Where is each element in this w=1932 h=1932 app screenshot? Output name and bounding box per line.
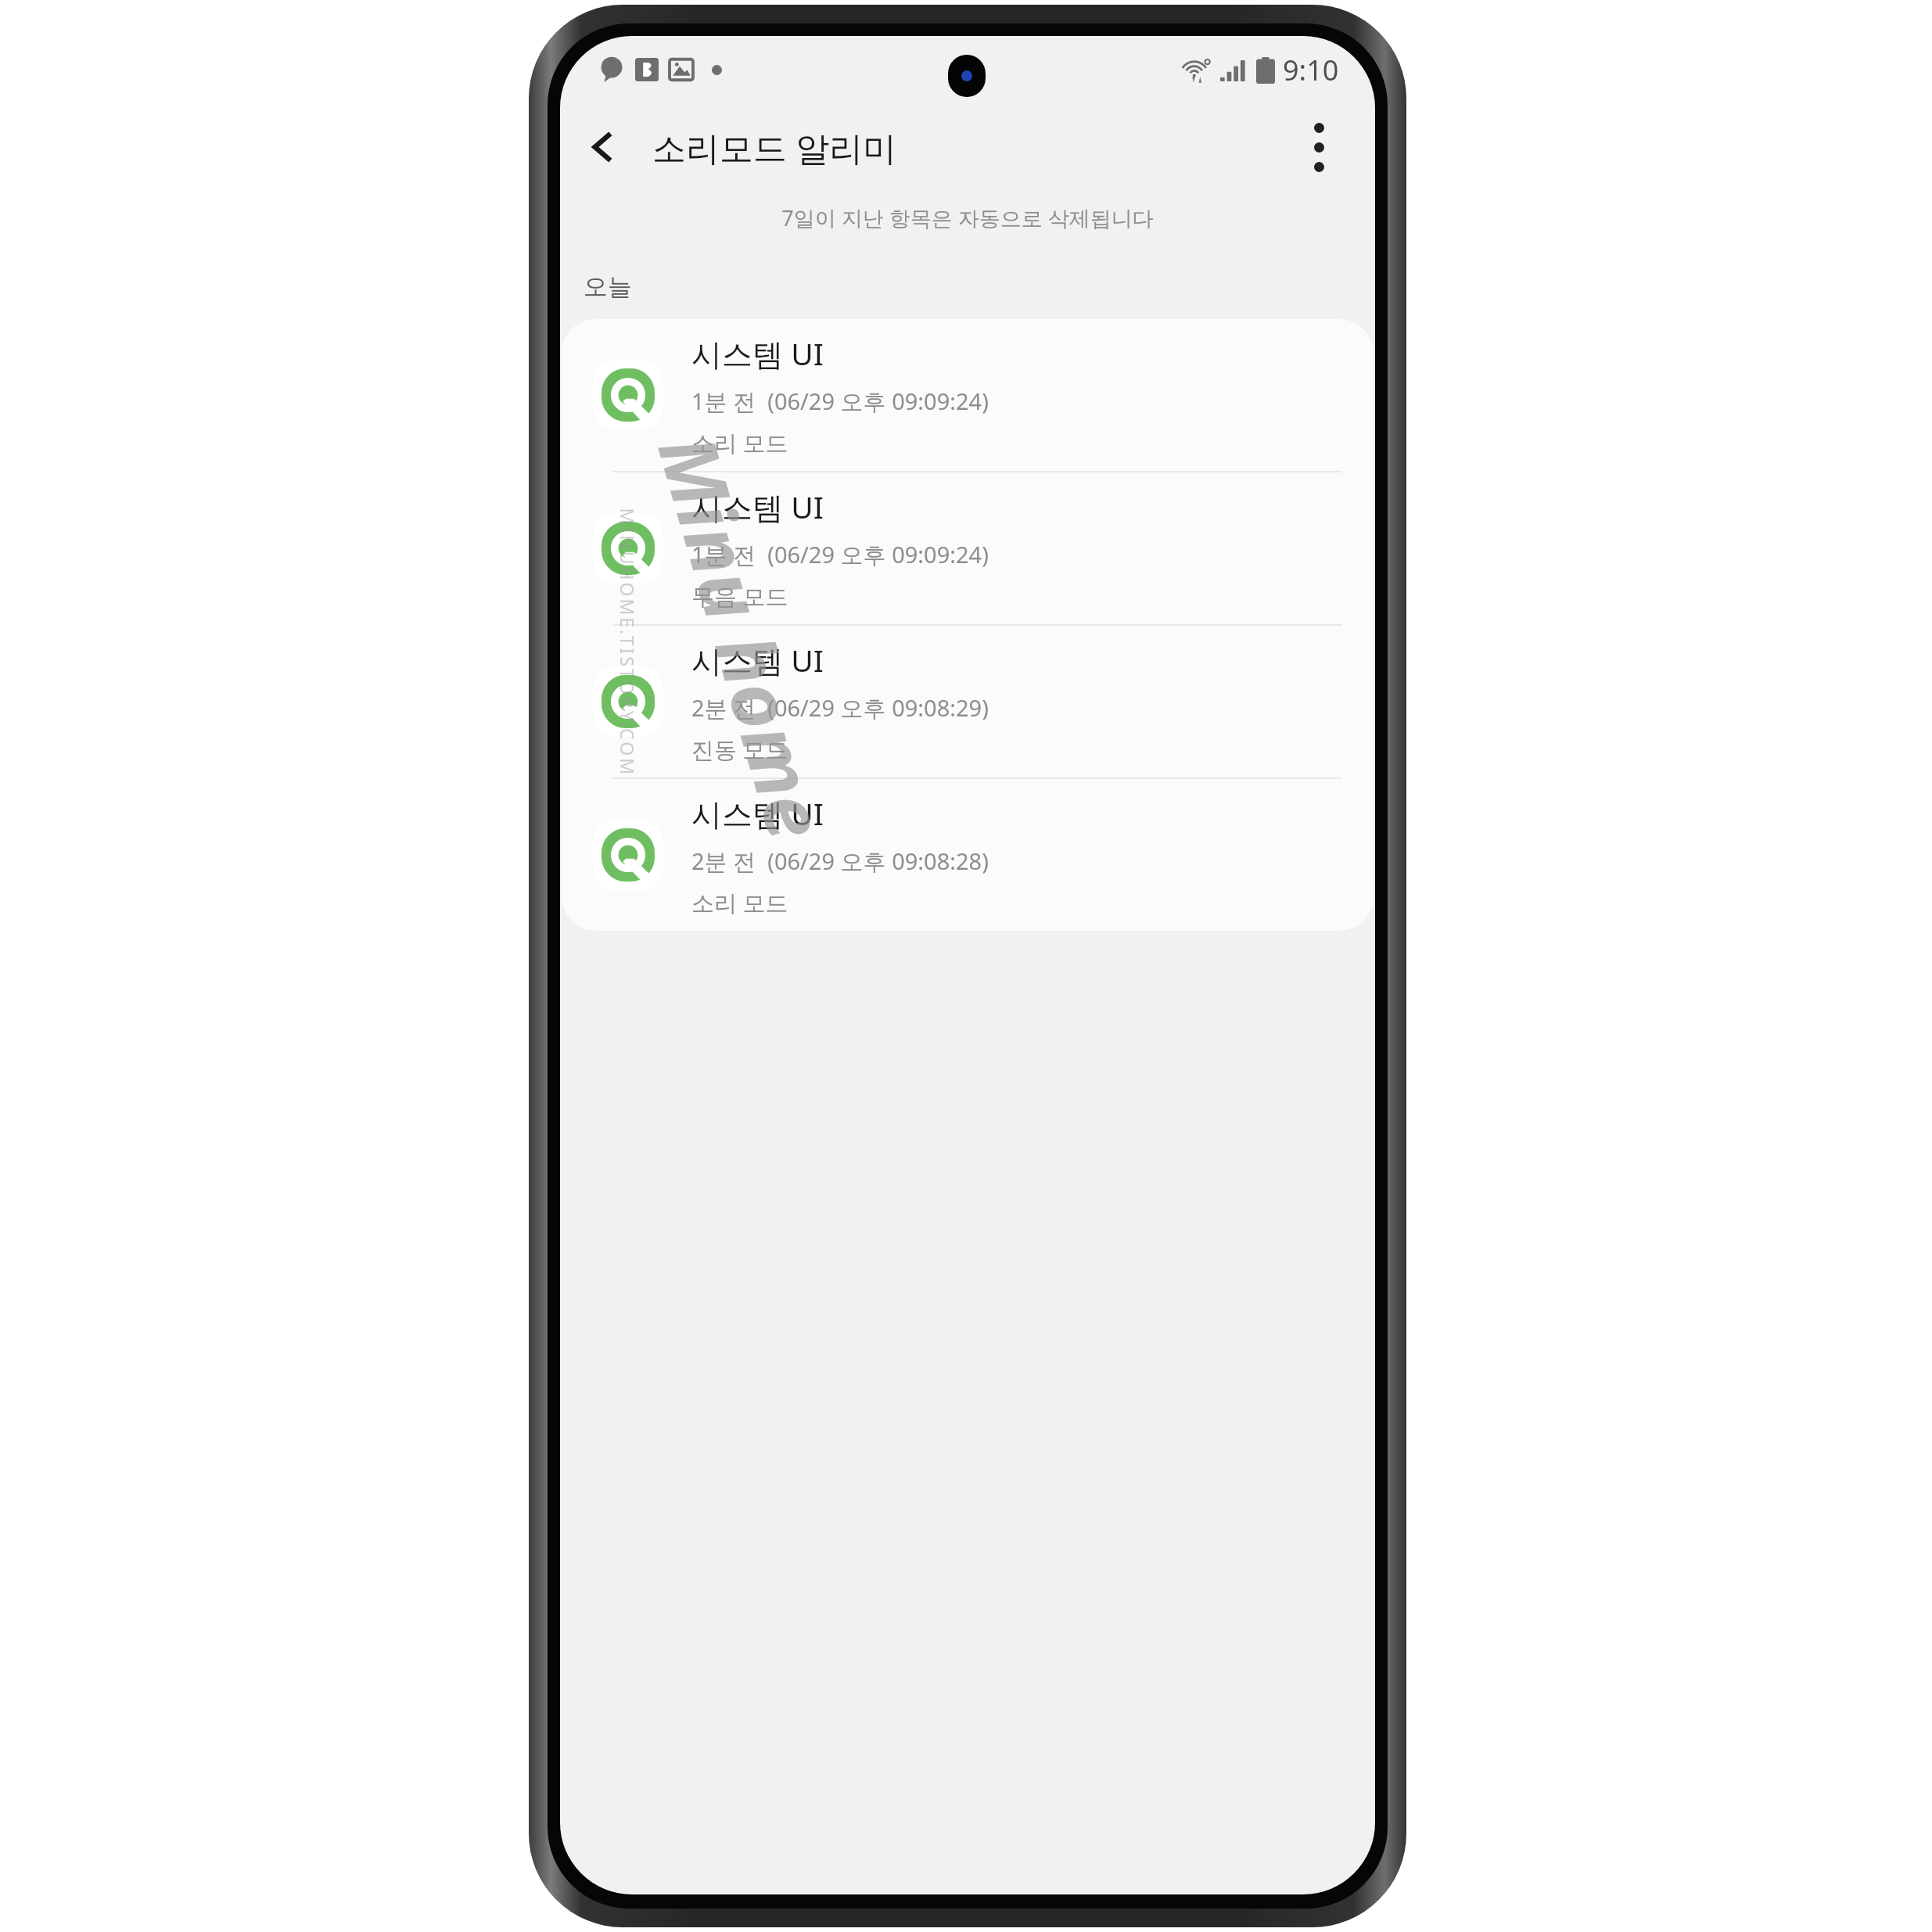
staticText: 시스템 UI	[691, 332, 824, 374]
button[interactable]: 시스템 UI	[562, 319, 1374, 471]
staticText: 소리 모드	[691, 427, 788, 458]
staticText: 7일이 지난 항목은 자동으로 삭제됩니다	[560, 203, 1375, 232]
button[interactable]: 시스템 UI	[562, 472, 1374, 624]
button[interactable]: Back	[568, 111, 640, 183]
staticText: MINUHOME.TISTORY.COM	[615, 508, 639, 777]
staticText: 1분 전 (06/29 오후 09:09:24)	[691, 386, 989, 417]
staticText: 1분 전 (06/29 오후 09:09:24)	[691, 539, 989, 570]
staticText: Minu home	[636, 423, 852, 851]
staticText: 소리 모드	[691, 887, 788, 918]
staticText: 2분 전 (06/29 오후 09:08:28)	[691, 846, 989, 877]
staticText: 진동 모드	[691, 734, 788, 765]
button[interactable]: 시스템 UI	[562, 626, 1374, 777]
staticText: 2분 전 (06/29 오후 09:08:29)	[691, 692, 989, 724]
staticText: 시스템 UI	[691, 792, 824, 834]
staticText: 무음 모드	[691, 580, 788, 612]
staticText: 9:10	[1283, 51, 1339, 89]
staticText: 시스템 UI	[691, 486, 824, 527]
button[interactable]: 시스템 UI	[562, 779, 1374, 931]
staticText: 시스템 UI	[691, 639, 824, 681]
button[interactable]: More options	[1284, 113, 1353, 181]
staticText: 소리모드 알리미	[652, 124, 897, 171]
staticText: 오늘	[584, 271, 632, 302]
